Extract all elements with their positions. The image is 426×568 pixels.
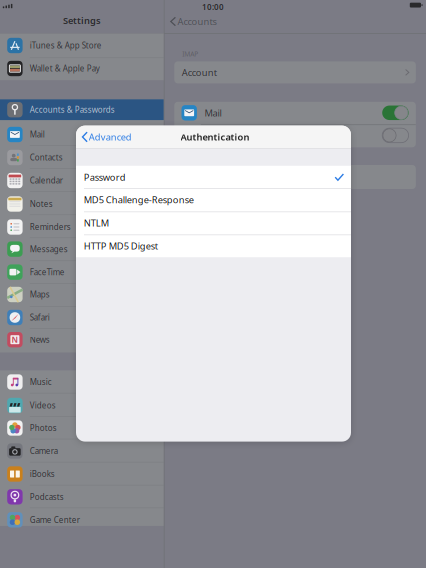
staticText: Accounts & Passwords [30,104,115,115]
staticText: N [11,334,18,345]
button[interactable]: FaceTime [0,261,164,284]
staticText: Game Center [30,514,80,525]
button[interactable]: Calendar [0,169,164,192]
staticText: Contacts [30,152,63,163]
button[interactable]: HTTP MD5 Digest [76,235,351,257]
staticText: Videos [30,400,56,411]
staticText: Music [30,377,52,387]
button[interactable]: Game Center [0,508,164,531]
staticText: NTLM [84,217,109,229]
staticText: Podcasts [30,491,64,502]
staticText: Maps [30,289,50,300]
staticText: IMAP [182,50,198,58]
staticText: Reminders [30,222,71,232]
staticText: iTunes & App Store [30,40,102,51]
button[interactable]: Account [174,61,416,83]
staticText: Settings [63,14,101,27]
button[interactable]: iTunes & App Store [0,34,164,57]
button[interactable]: Maps [0,283,164,306]
staticText: Mail [204,107,221,119]
staticText: Camera [30,446,58,456]
button[interactable]: Accounts [167,11,220,31]
staticText: Notes [204,129,229,142]
button[interactable]: Music [0,370,164,393]
staticText: Messages [30,244,68,254]
button[interactable]: Mail [0,123,164,146]
staticText: Wallet & Apple Pay [30,63,100,74]
button[interactable]: Contacts [0,146,164,169]
staticText: Advanced [89,131,132,143]
staticText: Photos [30,423,57,433]
button[interactable]: Videos [0,394,164,417]
staticText: iBooks [30,469,55,479]
staticText: FaceTime [30,267,65,277]
staticText: Safari [30,312,50,323]
staticText: MD5 Challenge-Response [84,193,194,206]
staticText: News [30,334,50,345]
button[interactable]: iBooks [0,462,164,485]
staticText: HTTP MD5 Digest [84,240,158,252]
staticText: Account [182,66,217,79]
staticText: Calendar [30,175,63,186]
button[interactable]: Notes [174,124,416,147]
button[interactable]: Mail [174,101,416,124]
staticText: Notes [30,199,53,209]
button[interactable]: N [0,328,164,351]
staticText: Mail [30,129,45,140]
button[interactable]: Messages [0,238,164,261]
staticText: Accounts [177,15,216,28]
staticText: 10:00 [202,1,224,12]
button[interactable]: Advanced [76,126,138,148]
staticText: Authentication [180,131,249,143]
button[interactable]: Password [76,166,351,188]
button[interactable]: Safari [0,306,164,329]
button[interactable]: MD5 Challenge-Response [76,188,351,211]
button[interactable]: Camera [0,439,164,462]
staticText: Password [84,171,126,183]
button[interactable]: Photos [0,416,164,439]
button[interactable]: Accounts & Passwords [0,98,164,121]
button[interactable]: Reminders [0,215,164,238]
button[interactable]: Podcasts [0,485,164,508]
button[interactable]: Notes [0,192,164,215]
button[interactable]: Wallet & Apple Pay [0,57,164,80]
button[interactable]: NTLM [76,212,351,234]
